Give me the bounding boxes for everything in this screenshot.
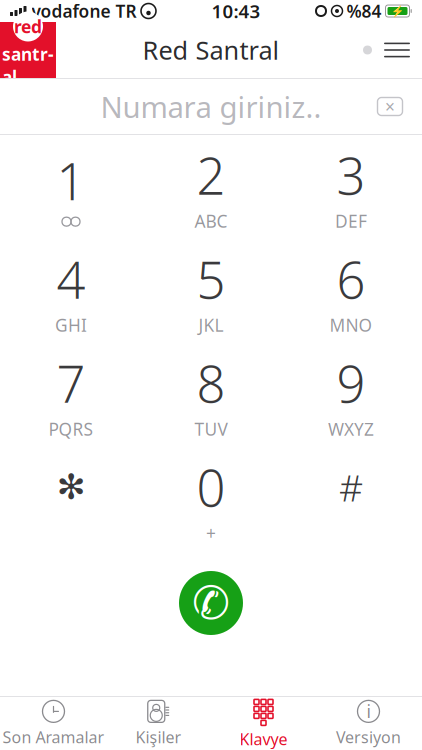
button[interactable]: Son Aramalar [1, 697, 106, 749]
button[interactable]: 7 [1, 343, 141, 447]
staticText: ABC [194, 210, 227, 233]
staticText: 3 [336, 141, 365, 209]
staticText: TUV [194, 418, 227, 441]
button[interactable]: 4 [1, 239, 141, 343]
button[interactable]: 5 [141, 239, 281, 343]
staticText: %84 [346, 0, 381, 22]
staticText: Versiyon [336, 726, 401, 748]
staticText: ✆ [192, 577, 230, 629]
staticText: × [385, 95, 395, 118]
staticText: Kişiler [135, 726, 181, 748]
staticText: GHI [55, 314, 87, 337]
button[interactable]: 9 [281, 343, 421, 447]
staticText: ⚡ [391, 5, 404, 17]
staticText: # [339, 462, 363, 512]
staticText: 6 [336, 245, 365, 313]
staticText: 10:43 [211, 0, 260, 23]
button[interactable]: 3 [281, 135, 421, 239]
staticText: 8 [196, 349, 225, 417]
staticText: MNO [329, 314, 372, 337]
button[interactable]: Kişiler [106, 697, 211, 749]
staticText: + [206, 522, 216, 545]
staticText: Red Santral [142, 33, 279, 67]
staticText: JKL [198, 314, 223, 337]
button[interactable]: 1 [1, 135, 141, 239]
staticText: 5 [196, 245, 225, 313]
button[interactable]: 8 [141, 343, 281, 447]
staticText: vodafone TR [31, 0, 136, 22]
button[interactable]: 2 [141, 135, 281, 239]
staticText: WXYZ [328, 418, 374, 441]
staticText: 1 [56, 147, 85, 214]
button[interactable]: Menu [372, 29, 422, 71]
staticText: PQRS [48, 418, 93, 441]
staticText: DEF [335, 210, 367, 233]
button[interactable]: ✻ [1, 447, 141, 551]
staticText: Son Aramalar [2, 726, 104, 748]
button[interactable]: i [316, 697, 421, 749]
staticText: 9 [336, 349, 365, 417]
staticText: ✻ [56, 467, 85, 507]
button[interactable]: 0 [141, 447, 281, 551]
button[interactable]: Call [171, 563, 251, 643]
button[interactable]: # [281, 447, 421, 551]
staticText: Klavye [239, 728, 287, 750]
staticText: 0 [196, 453, 225, 521]
staticText: 4 [56, 245, 85, 313]
button[interactable]: Delete [358, 84, 422, 128]
staticText: Numara giriniz.. [100, 87, 321, 126]
staticText: 2 [196, 141, 225, 209]
staticText: red [14, 15, 42, 38]
button[interactable]: Klavye [211, 697, 316, 749]
staticText: 7 [56, 349, 85, 417]
button[interactable]: 6 [281, 239, 421, 343]
staticText: santral [2, 42, 54, 88]
staticText: i [366, 700, 370, 723]
